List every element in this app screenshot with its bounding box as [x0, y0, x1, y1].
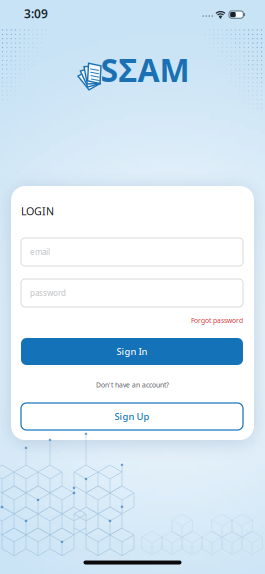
- staticText: email: [30, 247, 50, 257]
- button[interactable]: Sign In: [21, 338, 243, 365]
- button[interactable]: password: [21, 279, 243, 307]
- staticText: LOGIN: [21, 204, 54, 218]
- staticText: Don't have an account?: [96, 381, 169, 389]
- staticText: Sign In: [116, 345, 147, 358]
- staticText: password: [30, 288, 66, 298]
- staticText: Forgot password: [191, 316, 243, 325]
- staticText: SΣAM: [100, 48, 189, 91]
- button[interactable]: Forgot password: [191, 316, 243, 325]
- button[interactable]: Sign Up: [21, 403, 243, 430]
- button[interactable]: email: [21, 238, 243, 266]
- staticText: Sign Up: [114, 410, 149, 423]
- staticText: 3:09: [24, 5, 48, 21]
